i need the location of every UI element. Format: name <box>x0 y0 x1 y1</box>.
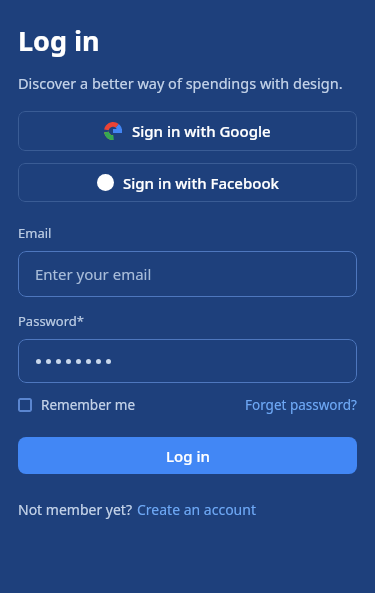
staticText: Password* <box>18 312 84 330</box>
button[interactable]: Sign in with Facebook <box>18 163 357 202</box>
button[interactable]: Google logo <box>18 111 357 151</box>
staticText: Not member yet? <box>18 500 132 519</box>
staticText: Log in <box>18 22 100 59</box>
button[interactable] <box>18 339 357 383</box>
button[interactable]: Remember me <box>18 393 136 417</box>
staticText: Discover a better way of spendings with … <box>18 73 343 93</box>
staticText: Create an account <box>137 500 256 519</box>
staticText: Log in <box>166 446 210 466</box>
staticText: Forget password? <box>245 396 357 414</box>
button[interactable]: Enter your email <box>18 251 357 297</box>
button[interactable]: Log in <box>18 437 357 474</box>
staticText: Remember me <box>41 396 136 414</box>
button[interactable]: Create an account <box>137 500 256 519</box>
staticText: Sign in with Facebook <box>123 173 279 193</box>
staticText: Enter your email <box>35 264 152 284</box>
staticText: Email <box>18 224 52 242</box>
staticText: Sign in with Google <box>132 121 271 141</box>
other: Google logo <box>104 122 122 140</box>
button[interactable]: Forget password? <box>245 393 357 417</box>
